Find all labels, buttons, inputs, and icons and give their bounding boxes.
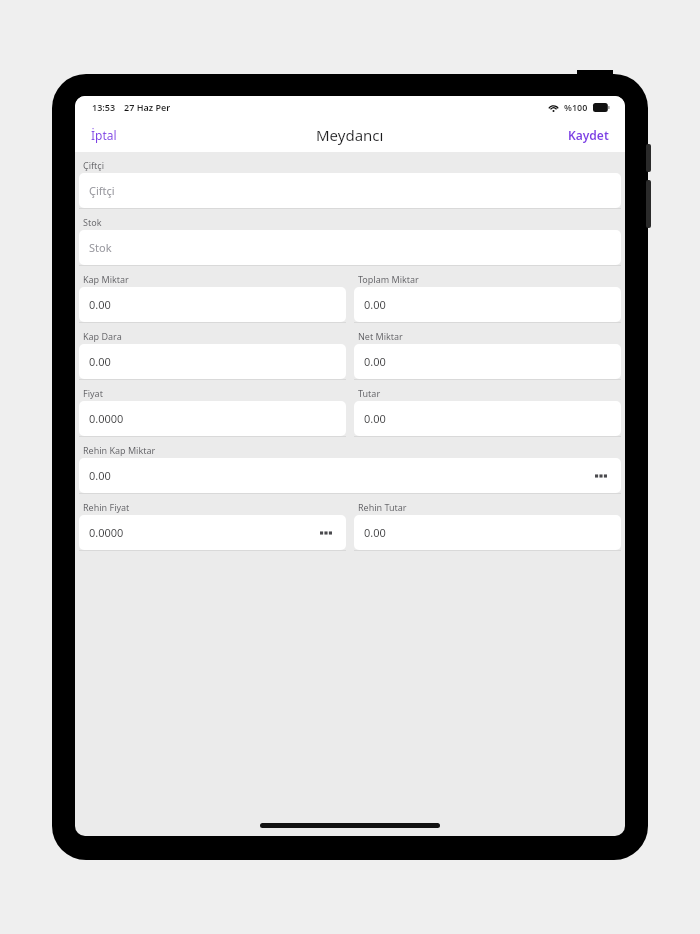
button[interactable]: İptal [75,119,133,151]
staticText: Stok [83,216,102,228]
button[interactable]: 0.00 [79,287,346,322]
staticText: İptal [91,127,117,143]
staticText: 0.00 [364,354,386,369]
button[interactable]: More options [316,527,336,539]
staticText: 0.00 [89,297,111,312]
button[interactable]: 0.00 [354,287,621,322]
staticText: Fiyat [83,387,103,399]
staticText: Stok [89,240,112,255]
staticText: 27 Haz Per [124,101,171,113]
button[interactable]: Kaydet [552,119,625,151]
button[interactable]: 0.00 [354,344,621,379]
button[interactable]: 0.00 [79,344,346,379]
button[interactable]: 0.00 [354,401,621,436]
staticText: Toplam Miktar [358,273,419,285]
staticText: 0.00 [89,468,111,483]
staticText: 0.0000 [89,525,124,540]
staticText: 0.00 [89,354,111,369]
staticText: 0.0000 [89,411,124,426]
staticText: Rehin Tutar [358,501,407,513]
button[interactable]: 0.00 [79,458,621,493]
staticText: %100 [564,101,588,113]
staticText: Çiftçi [83,159,104,171]
staticText: 0.00 [364,525,386,540]
staticText: Çiftçi [89,183,115,198]
button[interactable]: 0.0000 [79,515,346,550]
staticText: Kap Dara [83,330,122,342]
staticText: 0.00 [364,297,386,312]
staticText: Net Miktar [358,330,403,342]
button[interactable]: More options [591,470,611,482]
staticText: Meydancı [316,125,384,145]
button[interactable]: Çiftçi [79,173,621,208]
button[interactable]: 0.0000 [79,401,346,436]
staticText: Kap Miktar [83,273,129,285]
staticText: 0.00 [364,411,386,426]
button[interactable]: 0.00 [354,515,621,550]
staticText: 13:53 [92,101,116,113]
staticText: Tutar [358,387,381,399]
button[interactable]: Stok [79,230,621,265]
staticText: Kaydet [568,127,609,143]
staticText: Rehin Fiyat [83,501,130,513]
staticText: Rehin Kap Miktar [83,444,156,456]
